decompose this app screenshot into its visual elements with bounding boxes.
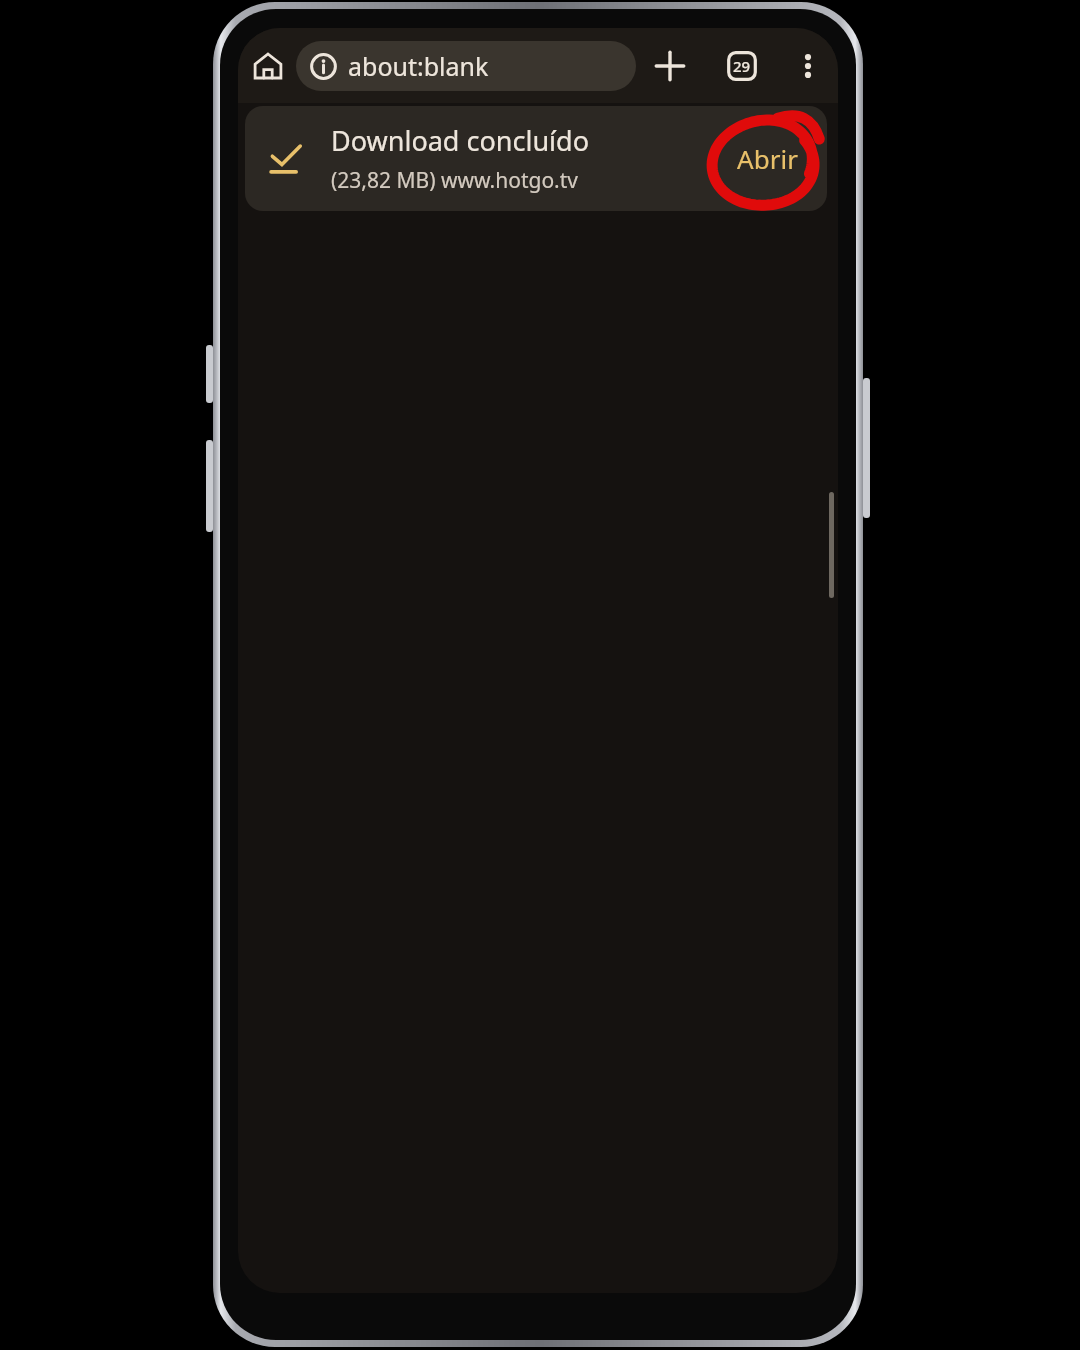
button[interactable]: New tab: [646, 42, 694, 90]
staticText: Download concluído: [331, 122, 589, 159]
staticText: Abrir: [737, 141, 798, 176]
button[interactable]: More options: [786, 44, 830, 88]
staticText: (23,82 MB) www.hotgo.tv: [331, 166, 578, 195]
button[interactable]: Download concluído: [245, 106, 827, 211]
button[interactable]: Home: [244, 42, 292, 90]
staticText: about:blank: [348, 49, 489, 83]
staticText: 29: [733, 56, 751, 76]
button[interactable]: Abrir: [707, 106, 827, 211]
button[interactable]: Tabs, 29 open: [718, 42, 766, 90]
button[interactable]: about:blank: [296, 41, 636, 91]
